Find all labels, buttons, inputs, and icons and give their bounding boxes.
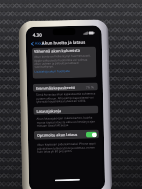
staticText: Tämä kuvastaa akun kapasiteettia suhtees… (36, 91, 97, 104)
staticText: Akun huolto ja lataus (42, 40, 86, 47)
staticText: Lisätietoja akun huollosta (34, 69, 70, 74)
staticText: Vähennä akun kulumista (34, 48, 81, 54)
staticText: Akku (35, 41, 45, 46)
other: Back (31, 42, 34, 46)
button[interactable]: Optimoitu akun lataus (34, 129, 99, 140)
button[interactable]: Back (30, 40, 46, 47)
staticText: Akun latausjaksojen määrä kertoo, kuinka… (36, 115, 98, 128)
staticText: Optimoitu akun lataus (37, 132, 78, 138)
button[interactable]: Enimmäiskapasiteetti (33, 82, 98, 92)
staticText: Latausjaksoja (36, 108, 61, 114)
button[interactable]: Latausjaksoja (33, 105, 98, 115)
staticText: Akun kunto on heikentynyt huomattavasti.… (34, 53, 94, 69)
button[interactable]: Vähennä akun kulumista (32, 46, 97, 79)
staticText: Akun käyttöiän pidentämiseksi iPhone opp… (37, 141, 98, 154)
staticText: 76 % (86, 84, 95, 90)
staticText: 4.30 (33, 32, 43, 38)
staticText: Enimmäiskapasiteetti (36, 85, 76, 91)
